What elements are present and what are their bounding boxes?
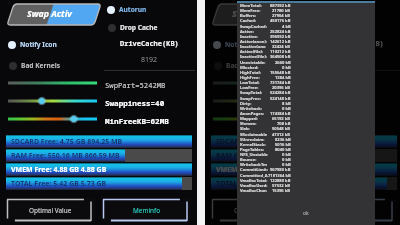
- button[interactable]: SDCARD Free: 4.75 GB 894.25 MB: [6, 135, 192, 148]
- staticText: 155648 kB: [270, 70, 291, 75]
- staticText: Shmem:: [240, 121, 268, 126]
- staticText: 364508 kB: [270, 54, 291, 59]
- staticText: Notify Icon: [20, 40, 57, 49]
- staticText: Inactive:: [240, 34, 268, 39]
- button[interactable]: Optimal Value: [211, 198, 300, 222]
- staticText: SwapFree:: [240, 96, 268, 101]
- staticText: LowTotal:: [240, 80, 268, 85]
- button[interactable]: Autorun: [107, 3, 147, 16]
- button[interactable]: Drop Cache: [108, 21, 158, 34]
- staticText: Mlocked:: [240, 65, 268, 70]
- staticText: Active(file):: [240, 49, 268, 54]
- button[interactable]: SDCARD Free: 4.75 GB 894.25 MB: [211, 135, 397, 148]
- staticText: Active(anon):: [240, 39, 268, 44]
- button[interactable]: Bad Kernels: [9, 59, 60, 72]
- staticText: 2660 kB: [275, 60, 291, 65]
- staticText: 8236 kB: [275, 137, 291, 142]
- staticText: MemFree:: [240, 8, 268, 13]
- staticText: Active:: [240, 29, 268, 34]
- button[interactable]: [213, 97, 302, 105]
- button[interactable]: Bad Kernels: [214, 59, 265, 72]
- staticText: TOTAL Free: 5.42 GB 5.73 GB: [216, 179, 312, 189]
- staticText: 174384 kB: [270, 111, 291, 116]
- staticText: SUnreclaim:: [240, 137, 268, 142]
- button[interactable]: VMEM Free: 4.88 GB 4.88 GB: [211, 163, 397, 176]
- staticText: NFS_Unstable:: [240, 152, 268, 157]
- staticText: SwapCached:: [240, 24, 268, 29]
- staticText: Swap Activ: [232, 8, 277, 20]
- staticText: MemTotal:: [240, 3, 268, 8]
- staticText: 887392 kB: [270, 3, 291, 8]
- staticText: DriveCache(KB): [325, 39, 384, 49]
- staticText: 65192 kB: [272, 116, 291, 121]
- button[interactable]: [8, 115, 97, 123]
- staticText: Cached:: [240, 18, 268, 23]
- staticText: Swappiness=40: [105, 98, 165, 108]
- staticText: HighFree:: [240, 75, 268, 80]
- staticText: 8 kB: [282, 101, 291, 106]
- staticText: 396932 kB: [270, 34, 291, 39]
- staticText: VmallocTotal:: [240, 178, 268, 183]
- staticText: LowFree:: [240, 85, 268, 90]
- button[interactable]: Meminfo: [102, 198, 191, 222]
- button[interactable]: Swap Activ: [210, 2, 302, 28]
- staticText: Meminfo: [133, 206, 161, 215]
- staticText: Autorun: [119, 5, 147, 14]
- button[interactable]: [8, 79, 97, 87]
- button[interactable]: RAM Free: 550.16 MB 866.59 MB: [211, 149, 397, 162]
- staticText: 0 kB: [282, 162, 291, 167]
- button[interactable]: [8, 97, 97, 105]
- staticText: DriveCache(KB): [120, 39, 179, 49]
- staticText: 0 kB: [282, 157, 291, 162]
- button[interactable]: Meminfo: [307, 198, 396, 222]
- button[interactable]: Swap Activ: [5, 2, 97, 28]
- button[interactable]: [213, 79, 302, 87]
- button[interactable]: RAM Free: 550.16 MB 866.59 MB: [6, 149, 192, 162]
- button[interactable]: Optimal Value: [6, 198, 95, 222]
- staticText: 0 kB: [282, 106, 291, 111]
- staticText: 122880 kB: [270, 178, 291, 183]
- staticText: HighTotal:: [240, 70, 268, 75]
- staticText: 0 kB: [282, 152, 291, 157]
- button[interactable]: Notify Icon: [213, 38, 262, 51]
- staticText: Committed_AS:: [240, 173, 268, 178]
- staticText: Dirty:: [240, 101, 268, 106]
- staticText: 50548 kB: [272, 126, 291, 131]
- staticText: RAM Free: 550.16 MB 866.59 MB: [11, 151, 120, 161]
- button[interactable]: [213, 115, 302, 123]
- staticText: Drop Cache: [120, 23, 158, 32]
- staticText: 252824 kB: [270, 29, 291, 34]
- staticText: Buffers:: [240, 13, 268, 18]
- staticText: Bad Kernels: [21, 61, 60, 70]
- staticText: SDCARD Free: 4.75 GB 894.25 MB: [216, 137, 328, 147]
- staticText: Unevictable:: [240, 60, 268, 65]
- staticText: 21780 kB: [272, 8, 291, 13]
- staticText: MinFreeKB=62MB: [105, 116, 169, 126]
- staticText: 110212 kB: [270, 49, 291, 54]
- staticText: 27904 kB: [272, 13, 291, 18]
- staticText: Notify Icon: [225, 40, 262, 49]
- button[interactable]: TOTAL Free: 5.42 GB 5.73 GB: [6, 177, 192, 190]
- staticText: 5016 kB: [275, 142, 291, 147]
- staticText: 142612 kB: [270, 39, 291, 44]
- staticText: 8192: [141, 55, 158, 65]
- button[interactable]: VMEM Free: 4.88 GB 4.88 GB: [6, 163, 192, 176]
- staticText: VMEM Free: 4.88 GB 4.88 GB: [216, 165, 312, 175]
- staticText: Optimal Value: [29, 206, 72, 215]
- staticText: RAM Free: 550.16 MB 866.59 MB: [216, 151, 325, 161]
- staticText: Optimal Value: [234, 206, 277, 215]
- staticText: Bad Kernels: [226, 61, 265, 70]
- staticText: 524148 kB: [270, 96, 291, 101]
- button[interactable]: Notify Icon: [8, 38, 57, 51]
- button[interactable]: ok: [290, 207, 322, 219]
- staticText: PageTables:: [240, 147, 268, 152]
- staticText: 450176 kB: [270, 18, 291, 23]
- staticText: 4 kB: [282, 24, 291, 29]
- button[interactable]: TOTAL Free: 5.42 GB 5.73 GB: [211, 177, 397, 190]
- staticText: 57532 kB: [272, 183, 291, 188]
